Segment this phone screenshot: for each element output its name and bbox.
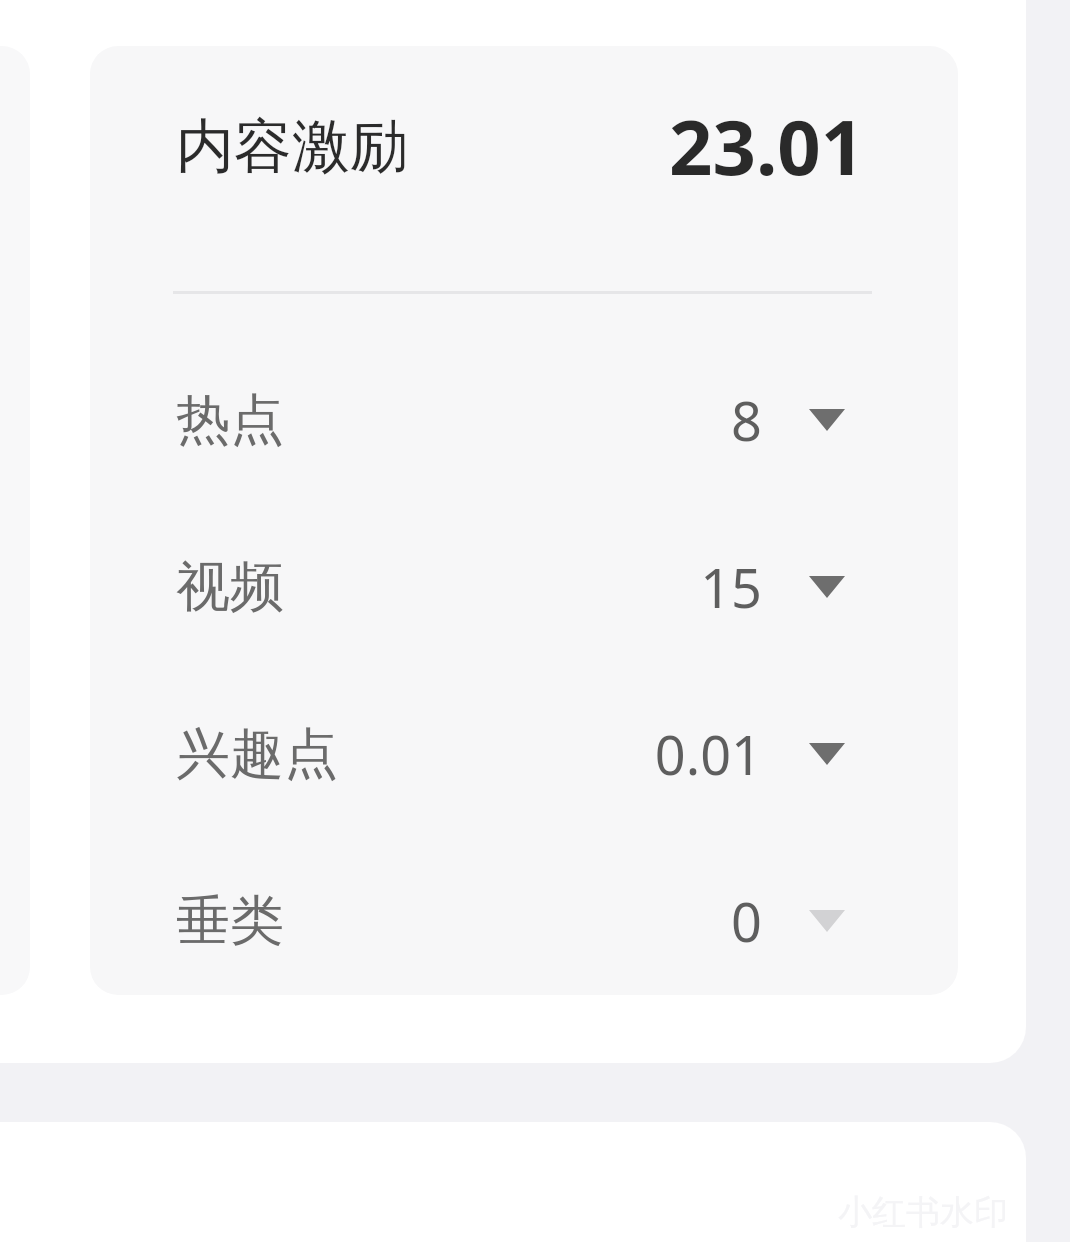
button[interactable]: 兴趣点 <box>90 670 958 837</box>
button[interactable]: 内容激励 <box>90 46 958 995</box>
staticText: 兴趣点 <box>176 720 338 788</box>
staticText: 热点 <box>176 386 284 454</box>
button[interactable]: 热点 <box>90 336 958 503</box>
staticText: 8 <box>522 383 762 457</box>
button[interactable]: 展开 热点 <box>797 390 857 450</box>
button[interactable]: 展开 兴趣点 <box>797 724 857 784</box>
button[interactable]: 视频 <box>90 503 958 670</box>
button[interactable]: 展开 视频 <box>797 557 857 617</box>
staticText: 垂类 <box>176 887 284 955</box>
staticText: 0.01 <box>522 717 762 791</box>
staticText: 15 <box>522 550 762 624</box>
staticText: 视频 <box>176 553 284 621</box>
staticText: 内容激励 <box>176 110 408 183</box>
button[interactable]: 展开 垂类 <box>797 891 857 951</box>
staticText: 0 <box>522 884 762 958</box>
button[interactable]: 垂类 <box>90 837 958 995</box>
staticText: 小红书水印 <box>838 1191 1008 1234</box>
staticText: 23.01 <box>669 94 865 198</box>
